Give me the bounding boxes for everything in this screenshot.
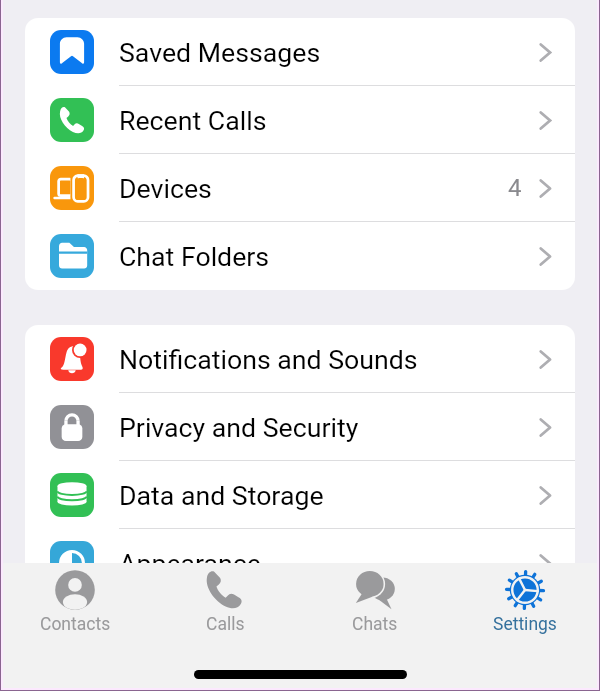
staticText: Chat Folders bbox=[119, 241, 270, 272]
staticText: Privacy and Security bbox=[119, 412, 359, 443]
button[interactable]: Chat Folders bbox=[25, 222, 575, 290]
button[interactable]: Devices bbox=[25, 154, 575, 222]
button[interactable]: Saved Messages bbox=[25, 18, 575, 86]
other: Calls bbox=[203, 568, 247, 612]
staticText: Settings bbox=[493, 614, 557, 635]
button[interactable]: Notifications and Sounds bbox=[25, 325, 575, 393]
other: Contacts bbox=[53, 568, 97, 612]
button[interactable]: Settings bbox=[450, 563, 600, 645]
staticText: 4 bbox=[508, 174, 522, 202]
staticText: Devices bbox=[119, 173, 212, 204]
button[interactable]: Chats bbox=[300, 563, 450, 645]
staticText: Recent Calls bbox=[119, 105, 267, 136]
staticText: Chats bbox=[352, 614, 398, 635]
staticText: Notifications and Sounds bbox=[119, 344, 418, 375]
staticText: Contacts bbox=[40, 614, 111, 635]
button[interactable]: Appearance bbox=[25, 529, 575, 563]
button[interactable]: Calls bbox=[150, 563, 300, 645]
button[interactable]: Data and Storage bbox=[25, 461, 575, 529]
other: Chats bbox=[353, 568, 397, 612]
staticText: Saved Messages bbox=[119, 37, 321, 68]
staticText: Calls bbox=[206, 614, 245, 635]
button[interactable]: Contacts bbox=[0, 563, 150, 645]
button[interactable]: Privacy and Security bbox=[25, 393, 575, 461]
other: Settings bbox=[503, 568, 547, 612]
staticText: Data and Storage bbox=[119, 480, 324, 511]
button[interactable]: Recent Calls bbox=[25, 86, 575, 154]
staticText: Appearance bbox=[119, 548, 261, 563]
